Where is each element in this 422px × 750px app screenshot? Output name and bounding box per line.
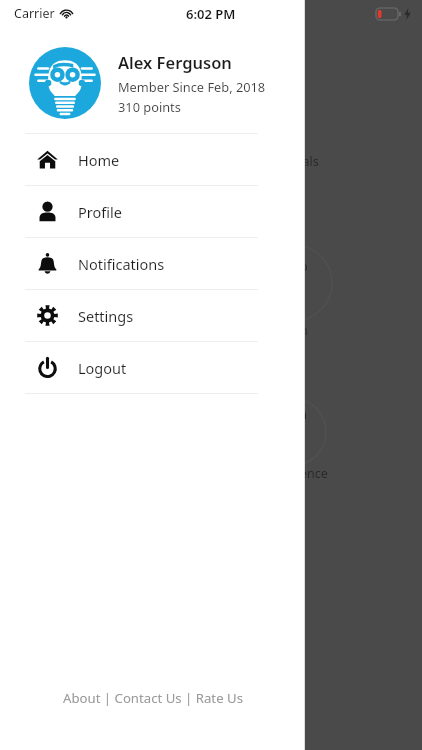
other: Profile photo — [29, 47, 101, 119]
button[interactable]: Settings — [0, 290, 305, 341]
button[interactable]: Profile — [0, 186, 305, 237]
button[interactable]: Notifications — [0, 238, 305, 289]
other: Home — [37, 149, 58, 170]
staticText: 310 points — [118, 98, 181, 115]
other: Logout — [37, 357, 58, 378]
button[interactable]: Home — [0, 134, 305, 185]
staticText: Home — [78, 150, 120, 170]
button[interactable]: Logout — [0, 342, 305, 393]
staticText: Tutorials — [268, 153, 319, 170]
staticText: Settings — [78, 306, 134, 326]
button[interactable]: About | Contact Us | Rate Us — [0, 689, 305, 707]
staticText: 6:02 PM — [186, 5, 236, 23]
staticText: Profile — [78, 202, 122, 222]
staticText: Alex Ferguson — [118, 51, 232, 73]
staticText: Member Since Feb, 2018 — [118, 78, 266, 95]
staticText: Carrier — [14, 5, 55, 22]
staticText: n — [300, 322, 308, 339]
button[interactable]: Profile photo — [29, 47, 305, 119]
staticText: ence — [300, 465, 328, 482]
other: Profile — [37, 201, 58, 222]
staticText: Logout — [78, 358, 127, 378]
staticText: a — [300, 406, 308, 423]
staticText: p — [300, 258, 308, 275]
other: Settings — [37, 305, 58, 326]
other: Notifications — [37, 253, 58, 274]
staticText: Notifications — [78, 254, 165, 274]
staticText: About | Contact Us | Rate Us — [63, 689, 243, 707]
